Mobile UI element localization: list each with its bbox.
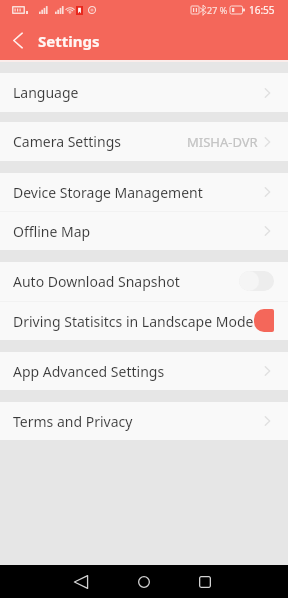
staticText: 27 % [207, 4, 228, 16]
staticText: App Advanced Settings [13, 362, 165, 381]
button[interactable]: Auto Download Snapshot toggle [239, 271, 274, 291]
button[interactable]: App Advanced Settings [0, 352, 288, 390]
button[interactable]: Auto Download Snapshot [0, 262, 288, 301]
button[interactable]: Terms and Privacy [0, 402, 288, 440]
staticText: Auto Download Snapshot [13, 272, 180, 291]
button[interactable]: Back [67, 565, 95, 598]
button[interactable]: Home [130, 565, 158, 598]
staticText: Offline Map [13, 222, 91, 241]
button[interactable]: Driving statistics toggle [254, 309, 274, 332]
staticText: Terms and Privacy [13, 412, 133, 431]
staticText: Language [13, 83, 79, 102]
button[interactable]: Back [0, 22, 36, 58]
staticText: Device Storage Management [13, 183, 203, 202]
staticText: Settings [38, 31, 100, 51]
staticText: 16:55 [249, 3, 275, 17]
button[interactable]: Language [0, 73, 288, 112]
button[interactable]: Driving Statisitcs in Landscape Mode [0, 302, 288, 340]
staticText: MISHA-DVR [187, 133, 258, 151]
button[interactable]: Device Storage Management [0, 173, 288, 211]
button[interactable]: Offline Map [0, 212, 288, 250]
staticText: Driving Statisitcs in Landscape Mode [13, 312, 254, 331]
staticText: Camera Settings [13, 132, 121, 151]
button[interactable]: Camera Settings [0, 122, 288, 161]
button[interactable]: Recents [191, 565, 219, 598]
